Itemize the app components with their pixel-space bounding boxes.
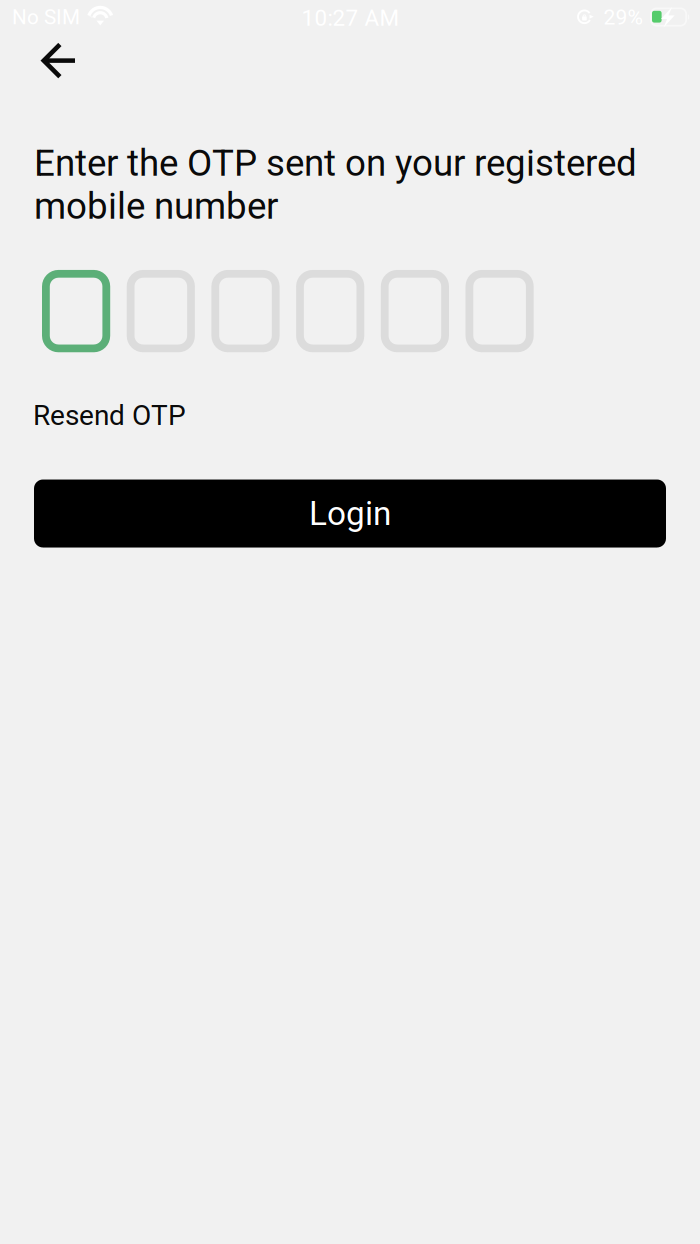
button[interactable]: OTP digit 1: [42, 270, 110, 352]
button[interactable]: OTP digit 6: [465, 270, 534, 352]
button[interactable]: Back: [20, 28, 95, 94]
button[interactable]: OTP digit 5: [381, 270, 449, 352]
staticText: Resend OTP: [33, 399, 186, 432]
staticText: Login: [309, 494, 391, 533]
button[interactable]: Resend OTP: [33, 398, 203, 432]
staticText: No SIM: [12, 5, 80, 29]
staticText: Enter the OTP sent on your registered mo…: [34, 142, 637, 228]
button[interactable]: OTP digit 4: [296, 270, 364, 352]
button[interactable]: OTP digit 3: [211, 270, 280, 352]
button[interactable]: OTP digit 2: [127, 270, 195, 352]
staticText: 10:27 AM: [301, 5, 399, 31]
staticText: 29%: [603, 5, 642, 30]
button[interactable]: Login: [34, 479, 666, 547]
